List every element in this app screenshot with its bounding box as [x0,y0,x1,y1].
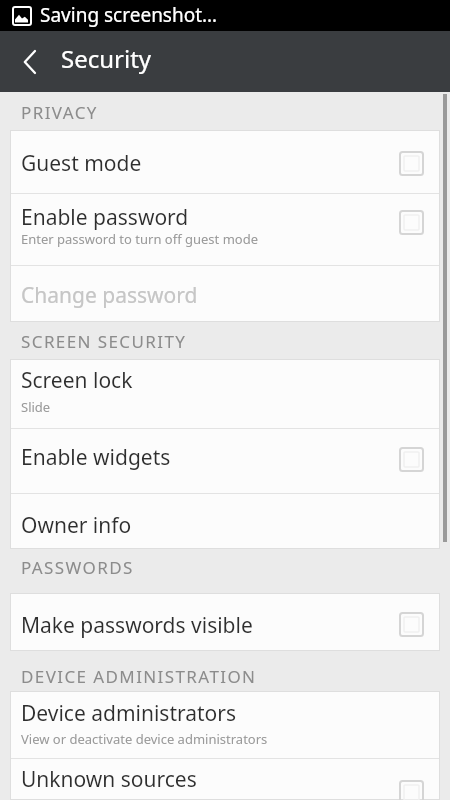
button[interactable]: Unknown sources [11,759,439,799]
button[interactable]: Change password [11,266,439,321]
staticText: Enter password to turn off guest mode [21,230,258,248]
staticText: Slide [21,398,51,416]
staticText: PRIVACY [21,101,98,124]
staticText: View or deactivate device administrators [21,730,268,748]
staticText: Saving screenshot… [40,2,218,28]
staticText: PASSWORDS [21,556,134,579]
staticText: Security [61,42,152,75]
staticText: Unknown sources [21,765,197,794]
staticText: Change password [21,281,198,310]
button[interactable]: Guest mode [11,131,439,193]
staticText: Enable widgets [21,443,171,472]
button[interactable]: Enable widgets [11,429,439,493]
button[interactable]: Owner info [11,494,439,548]
button[interactable]: Enable password [11,194,439,265]
button[interactable]: Make passwords visible [11,594,439,650]
button[interactable]: Device administrators [11,692,439,758]
button[interactable]: Security [0,31,450,92]
staticText: Enable password [21,203,189,232]
staticText: Make passwords visible [21,611,253,640]
staticText: Guest mode [21,149,142,178]
staticText: DEVICE ADMINISTRATION [21,665,257,688]
staticText: Owner info [21,511,132,540]
staticText: Device administrators [21,699,237,728]
button[interactable]: Screen lock [11,360,439,428]
staticText: SCREEN SECURITY [21,330,187,353]
staticText: Screen lock [21,366,133,395]
